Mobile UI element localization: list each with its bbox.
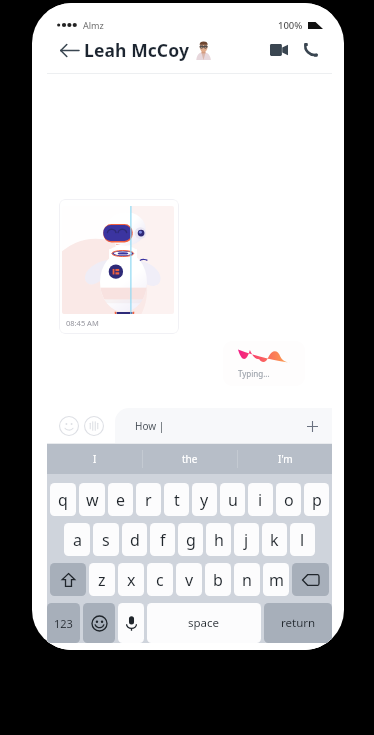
button[interactable]: Back: [56, 37, 82, 63]
staticText: Typing...: [238, 368, 270, 379]
staticText: I'm: [278, 452, 293, 466]
button[interactable]: I: [47, 444, 142, 474]
button[interactable]: d: [122, 523, 147, 556]
staticText: r: [145, 489, 152, 511]
staticText: n: [242, 569, 252, 591]
staticText: g: [186, 529, 196, 551]
button[interactable]: k: [262, 523, 287, 556]
button[interactable]: space: [147, 603, 261, 643]
staticText: p: [312, 489, 322, 511]
button[interactable]: Dictate: [118, 603, 144, 643]
button[interactable]: i: [248, 483, 273, 516]
staticText: return: [281, 615, 316, 631]
button[interactable]: e: [108, 483, 133, 516]
staticText: d: [130, 529, 140, 551]
staticText: How |: [135, 419, 165, 433]
staticText: y: [200, 489, 209, 511]
button[interactable]: return: [264, 603, 332, 643]
button[interactable]: Video call: [266, 37, 292, 63]
staticText: Leah McCoy: [84, 38, 189, 62]
staticText: q: [58, 489, 68, 511]
staticText: o: [284, 489, 294, 511]
button[interactable]: o: [276, 483, 301, 516]
staticText: m: [269, 569, 284, 591]
staticText: v: [185, 569, 194, 591]
staticText: j: [244, 529, 249, 551]
button[interactable]: the: [143, 444, 237, 474]
staticText: w: [86, 489, 99, 511]
button[interactable]: t: [164, 483, 189, 516]
staticText: space: [188, 615, 220, 631]
button[interactable]: f: [150, 523, 175, 556]
staticText: l: [300, 529, 305, 551]
staticText: 100%: [278, 19, 303, 32]
button[interactable]: Emoji: [59, 416, 79, 436]
button[interactable]: p: [304, 483, 329, 516]
staticText: 08:45 AM: [66, 318, 99, 328]
staticText: s: [102, 529, 110, 551]
button[interactable]: q: [50, 483, 76, 516]
staticText: t: [174, 489, 180, 511]
button[interactable]: u: [220, 483, 245, 516]
button[interactable]: Call: [297, 37, 323, 63]
staticText: z: [98, 569, 106, 591]
button[interactable]: I'm: [238, 444, 332, 474]
button[interactable]: Voice message: [84, 416, 104, 436]
staticText: a: [73, 529, 82, 551]
button[interactable]: Emoji keyboard: [83, 603, 115, 643]
button[interactable]: v: [176, 563, 202, 596]
button[interactable]: h: [206, 523, 231, 556]
staticText: 123: [54, 616, 73, 631]
button[interactable]: z: [89, 563, 115, 596]
button[interactable]: r: [136, 483, 161, 516]
button[interactable]: m: [263, 563, 289, 596]
button[interactable]: g: [178, 523, 203, 556]
button[interactable]: Typing...: [223, 341, 305, 386]
staticText: b: [213, 569, 223, 591]
button[interactable]: y: [192, 483, 217, 516]
button[interactable]: a: [64, 523, 90, 556]
button[interactable]: s: [93, 523, 119, 556]
staticText: Almz: [83, 19, 104, 31]
staticText: e: [116, 489, 126, 511]
button[interactable]: Backspace: [292, 563, 329, 596]
button[interactable]: n: [234, 563, 260, 596]
button[interactable]: c: [147, 563, 173, 596]
button[interactable]: 08:45 AM: [59, 199, 179, 334]
staticText: h: [214, 529, 224, 551]
staticText: x: [127, 569, 136, 591]
button[interactable]: b: [205, 563, 231, 596]
button[interactable]: Shift: [50, 563, 86, 596]
staticText: c: [156, 569, 164, 591]
button[interactable]: j: [234, 523, 259, 556]
button[interactable]: l: [290, 523, 315, 556]
staticText: k: [270, 529, 279, 551]
staticText: I: [93, 452, 97, 466]
staticText: i: [258, 489, 263, 511]
staticText: f: [160, 529, 166, 551]
button[interactable]: 123: [47, 603, 80, 643]
staticText: u: [228, 489, 238, 511]
button[interactable]: Add attachment: [302, 416, 322, 436]
button[interactable]: w: [79, 483, 105, 516]
button[interactable]: How |: [115, 408, 332, 444]
button[interactable]: x: [118, 563, 144, 596]
staticText: the: [182, 452, 198, 466]
